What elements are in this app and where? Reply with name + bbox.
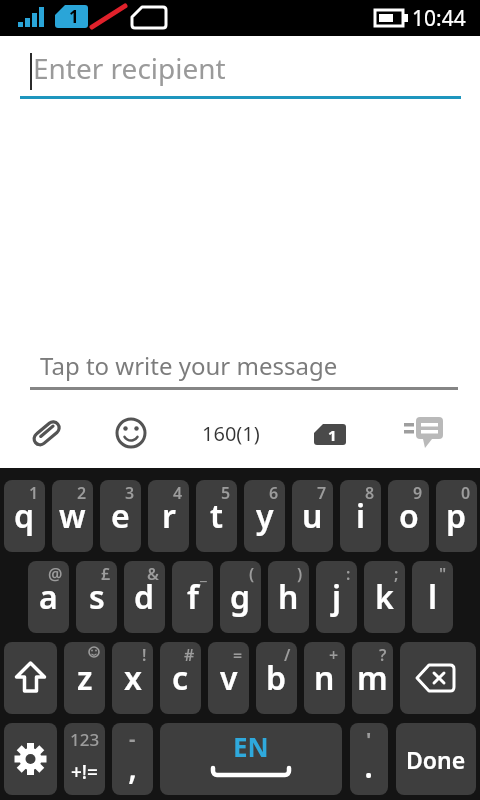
staticText: 3 — [125, 482, 135, 504]
button[interactable]: h — [268, 561, 309, 633]
staticText: ) — [297, 563, 303, 585]
staticText: ; — [394, 563, 399, 585]
staticText: m — [357, 656, 388, 700]
staticText: f — [187, 575, 199, 619]
button[interactable]: a — [28, 561, 69, 633]
staticText: z — [77, 656, 93, 700]
button[interactable]: k — [364, 561, 405, 633]
staticText: e — [111, 494, 130, 538]
button[interactable]: Enter recipient — [0, 36, 480, 99]
staticText: q — [14, 494, 35, 538]
staticText: " — [439, 563, 447, 585]
staticText: u — [302, 494, 323, 538]
staticText: 123 — [70, 728, 100, 751]
button[interactable]: g — [220, 561, 261, 633]
staticText: 1 — [29, 482, 39, 504]
button[interactable]: q — [4, 480, 45, 552]
staticText: l — [428, 575, 438, 619]
staticText: o — [399, 494, 419, 538]
button[interactable]: t — [196, 480, 237, 552]
button[interactable]: v — [208, 642, 249, 714]
staticText: g — [230, 575, 251, 619]
staticText: i — [356, 494, 366, 538]
staticText: Enter recipient — [33, 49, 226, 87]
staticText: w — [59, 494, 86, 538]
button[interactable] — [400, 414, 448, 454]
button[interactable]: 1 — [313, 413, 347, 453]
button[interactable]: p — [436, 480, 477, 552]
staticText: + — [329, 644, 339, 666]
button[interactable] — [108, 410, 154, 456]
staticText: , — [128, 744, 138, 790]
staticText: ? — [379, 644, 387, 666]
staticText: @ — [48, 563, 63, 585]
button[interactable] — [4, 642, 57, 714]
button[interactable]: j — [316, 561, 357, 633]
staticText: v — [220, 656, 238, 700]
staticText: 2 — [77, 482, 87, 504]
staticText: ( — [249, 563, 255, 585]
button[interactable]: m — [352, 642, 393, 714]
staticText: 0 — [461, 482, 471, 504]
staticText: 1 — [69, 5, 79, 28]
staticText: = — [233, 644, 243, 666]
staticText: . — [364, 742, 374, 788]
staticText: EN — [233, 729, 269, 764]
staticText: - — [129, 725, 136, 752]
button[interactable] — [400, 642, 476, 714]
button[interactable]: e — [100, 480, 141, 552]
button[interactable]: Tap to write your message — [0, 340, 480, 390]
button[interactable]: z — [64, 642, 105, 714]
staticText: ! — [142, 644, 147, 666]
staticText: t — [210, 494, 223, 538]
staticText: x — [124, 656, 142, 700]
button[interactable]: - — [112, 723, 153, 795]
staticText: c — [172, 656, 189, 700]
button[interactable]: x — [112, 642, 153, 714]
staticText: d — [134, 575, 155, 619]
button[interactable]: c — [160, 642, 201, 714]
staticText: 8 — [365, 482, 375, 504]
button[interactable]: o — [388, 480, 429, 552]
staticText: b — [266, 656, 287, 700]
staticText: k — [375, 575, 394, 619]
staticText: +!= — [71, 759, 98, 785]
button[interactable]: l — [412, 561, 453, 633]
staticText: a — [39, 575, 58, 619]
button[interactable]: r — [148, 480, 189, 552]
button[interactable]: EN — [160, 723, 342, 795]
button[interactable]: d — [124, 561, 165, 633]
button[interactable]: n — [304, 642, 345, 714]
staticText: 160(1) — [202, 420, 260, 447]
button[interactable] — [24, 410, 70, 456]
staticText: 7 — [317, 482, 327, 504]
button[interactable]: f — [172, 561, 213, 633]
button[interactable]: u — [292, 480, 333, 552]
button[interactable]: w — [52, 480, 93, 552]
staticText: s — [89, 575, 105, 619]
button[interactable]: y — [244, 480, 285, 552]
button[interactable] — [4, 723, 57, 795]
staticText: j — [332, 575, 342, 619]
staticText: ' — [366, 726, 372, 753]
staticText: 5 — [221, 482, 231, 504]
staticText: / — [284, 644, 291, 666]
staticText: # — [184, 644, 195, 666]
button[interactable]: s — [76, 561, 117, 633]
button[interactable]: ' — [350, 723, 388, 795]
staticText: 6 — [269, 482, 279, 504]
staticText: : — [346, 563, 351, 585]
button[interactable]: i — [340, 480, 381, 552]
staticText: h — [278, 575, 299, 619]
staticText: 10:44 — [412, 4, 466, 33]
staticText: r — [162, 494, 176, 538]
staticText: 1 — [328, 425, 337, 445]
staticText: 9 — [413, 482, 423, 504]
staticText: & — [147, 563, 159, 585]
staticText: Done — [406, 744, 466, 775]
button[interactable]: Done — [396, 723, 476, 795]
staticText: n — [314, 656, 335, 700]
button[interactable]: b — [256, 642, 297, 714]
button[interactable]: 123 — [64, 723, 105, 795]
staticText: _ — [200, 563, 207, 585]
